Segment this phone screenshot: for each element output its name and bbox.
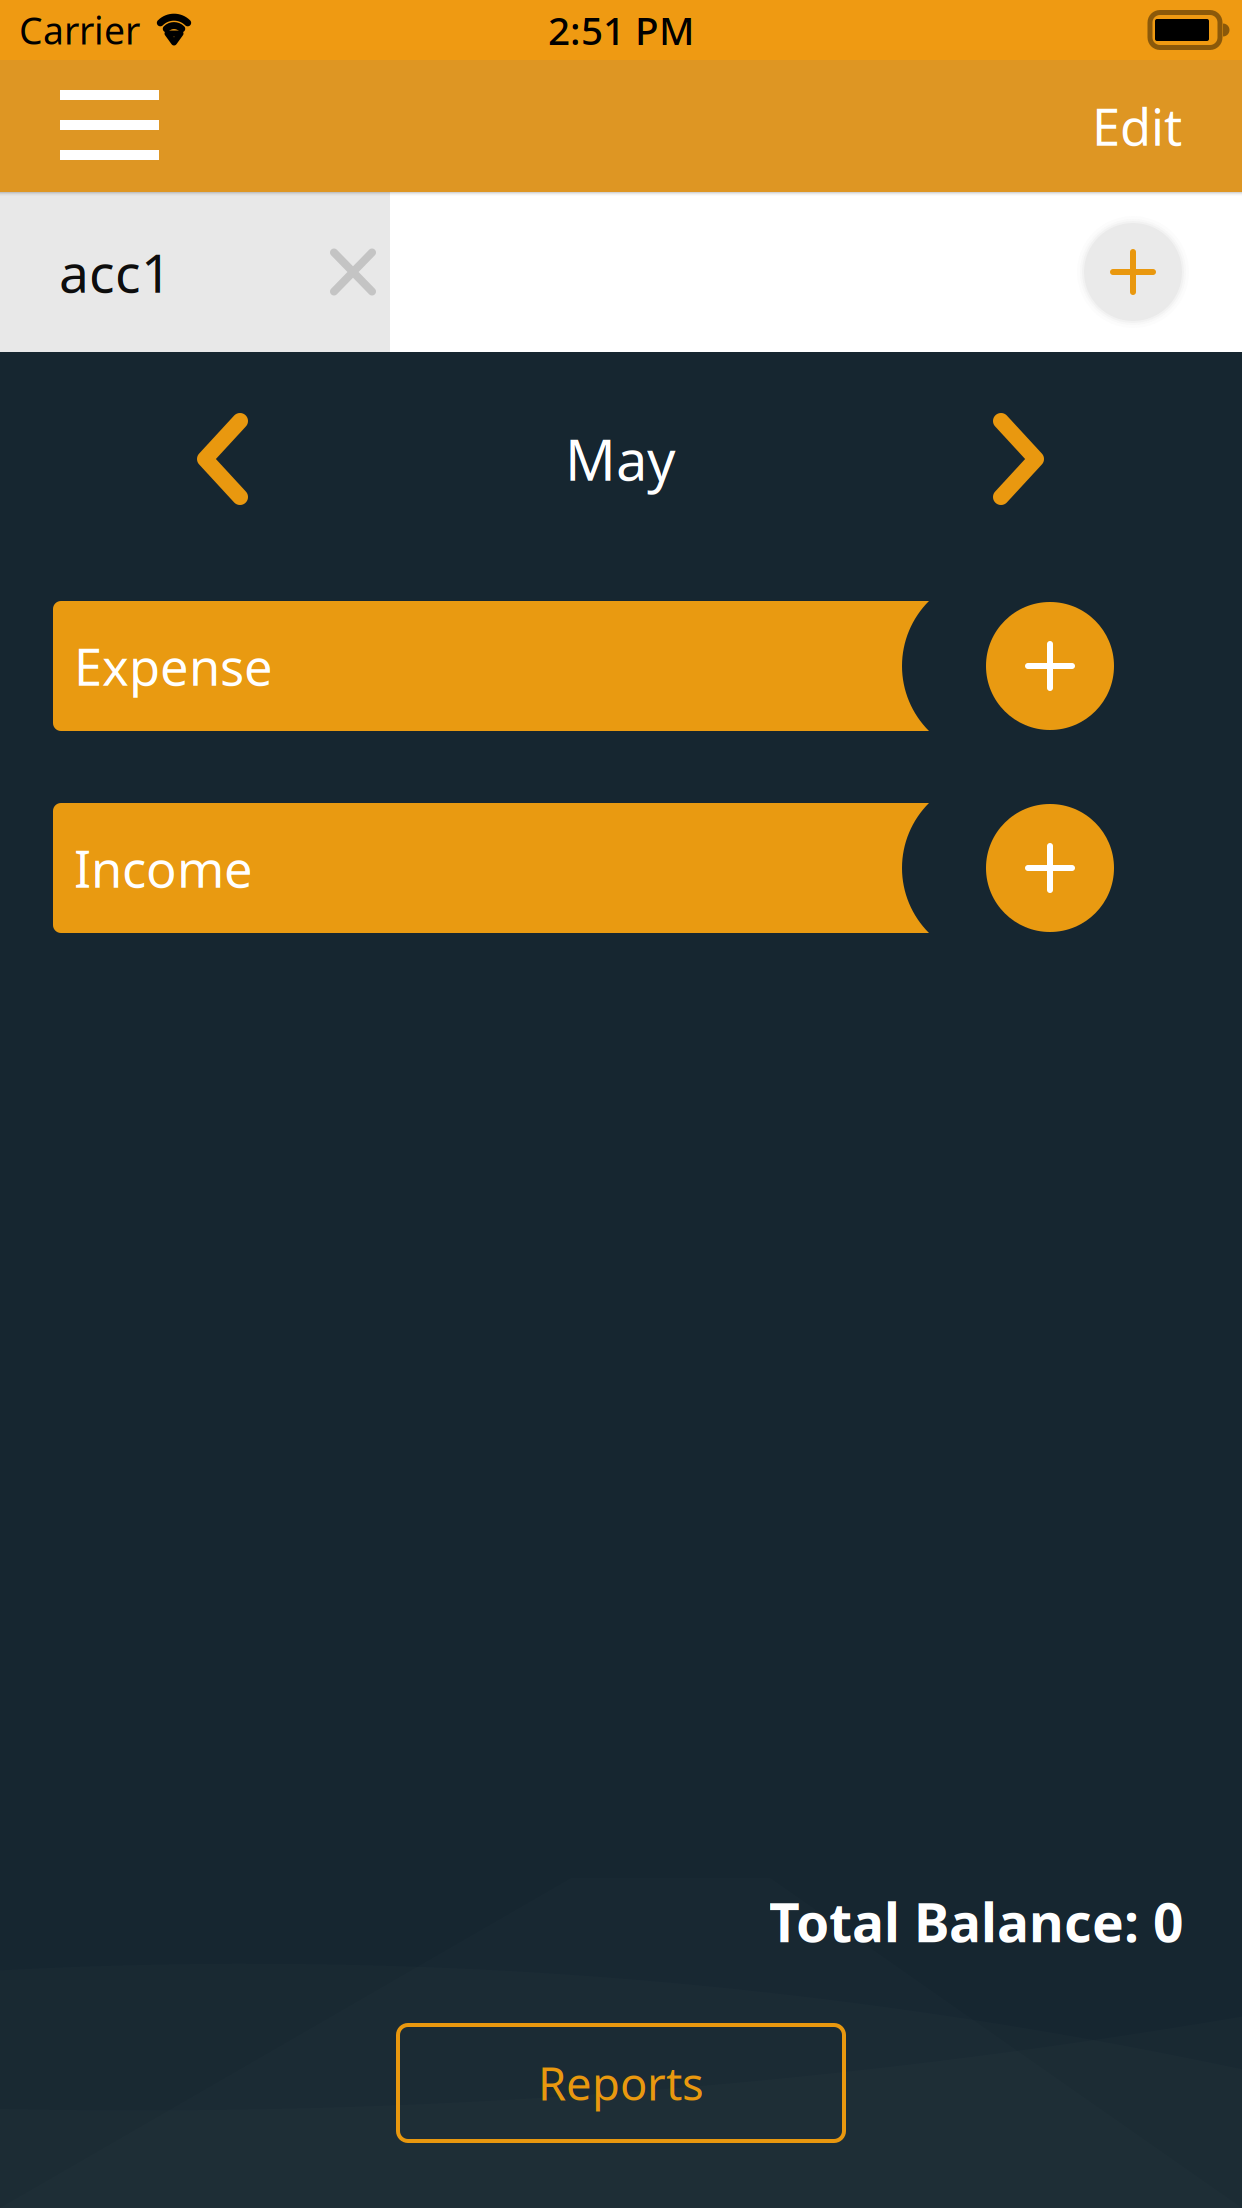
button[interactable]: Income [53,803,929,933]
button[interactable]: Expense [53,601,929,731]
staticText: Carrier [19,5,140,55]
staticText: May [565,422,676,496]
staticText: Income [74,834,253,902]
staticText: acc1 [59,237,172,307]
button[interactable]: Previous month [181,397,264,521]
button[interactable]: Reports [398,2025,844,2141]
button[interactable]: acc1 [0,192,390,352]
staticText: Total Balance: 0 [769,1886,1184,1957]
button[interactable]: Edit [1072,60,1202,192]
button[interactable]: Menu [40,60,179,192]
staticText: Expense [74,632,273,700]
button[interactable]: Add account [1073,192,1193,352]
staticText: Edit [1092,92,1182,160]
staticText: 2:51 PM [548,4,694,56]
staticText: Reports [538,2053,704,2113]
button[interactable]: Add Income [986,803,1114,933]
button[interactable]: Next month [977,397,1060,521]
button[interactable]: Add Expense [986,601,1114,731]
